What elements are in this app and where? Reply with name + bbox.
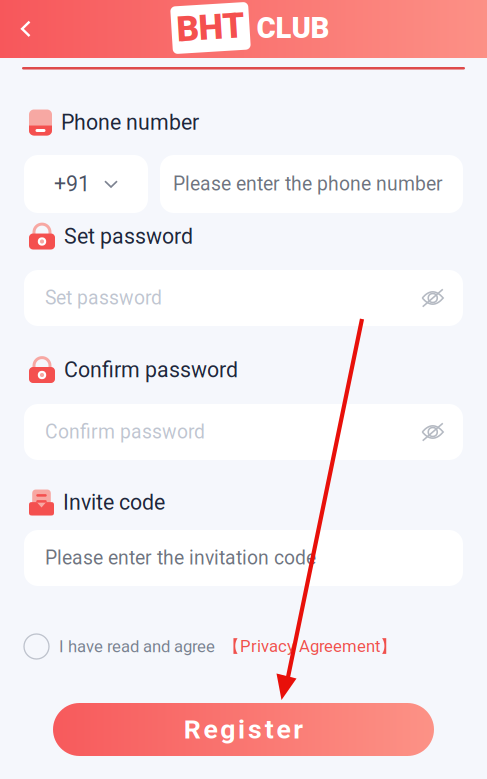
button[interactable]: Register bbox=[0, 703, 487, 756]
staticText: Confirm password bbox=[64, 357, 238, 382]
staticText: BHT bbox=[176, 7, 244, 48]
staticText: Please enter the phone number bbox=[173, 173, 443, 195]
button[interactable]: Agree to the privacy agreement bbox=[24, 634, 49, 659]
staticText: CLUB bbox=[256, 11, 329, 45]
staticText: Set password bbox=[45, 287, 162, 309]
staticText: I have read and agree bbox=[59, 637, 215, 656]
staticText: Set password bbox=[64, 224, 193, 249]
button[interactable]: +91 bbox=[24, 155, 148, 213]
staticText: 【Privacy Agreement】 bbox=[223, 636, 397, 657]
staticText: Please enter the invitation code bbox=[45, 547, 316, 569]
staticText: Invite code bbox=[63, 490, 165, 515]
staticText: +91 bbox=[54, 171, 90, 196]
staticText: Phone number bbox=[61, 110, 199, 135]
button[interactable]: 【Privacy Agreement】 bbox=[223, 636, 397, 657]
staticText: Confirm password bbox=[45, 421, 205, 443]
button[interactable]: Back bbox=[5, 8, 47, 50]
staticText: Register bbox=[184, 714, 303, 745]
